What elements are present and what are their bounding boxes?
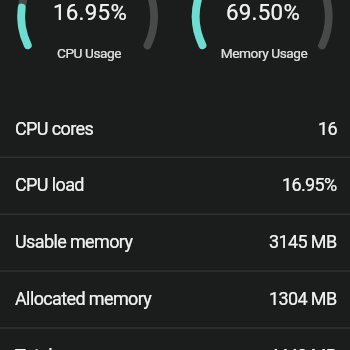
staticText: CPU load <box>15 174 84 195</box>
staticText: 3145 MB <box>269 231 337 252</box>
staticText: 1304 MB <box>269 288 337 309</box>
button[interactable]: CPU cores <box>0 101 350 158</box>
button[interactable]: Memory usage gauge <box>175 0 350 101</box>
staticText: CPU Usage <box>0 45 179 61</box>
staticText: 16 <box>318 118 337 139</box>
staticText: Memory Usage <box>174 45 350 61</box>
staticText: CPU cores <box>15 118 94 139</box>
staticText: 16.95% <box>0 0 180 25</box>
button[interactable]: Allocated memory <box>0 271 350 328</box>
staticText: Usable memory <box>15 231 133 252</box>
staticText: 69.50% <box>173 0 350 25</box>
staticText: Total memory <box>15 345 119 350</box>
staticText: Allocated memory <box>15 288 152 309</box>
button[interactable]: Usable memory <box>0 214 350 271</box>
staticText: 16.95% <box>282 174 337 195</box>
button[interactable]: Total memory <box>0 328 350 350</box>
button[interactable]: CPU usage gauge <box>0 0 175 101</box>
staticText: 4449 MB <box>269 345 337 350</box>
button[interactable]: CPU load <box>0 157 350 214</box>
